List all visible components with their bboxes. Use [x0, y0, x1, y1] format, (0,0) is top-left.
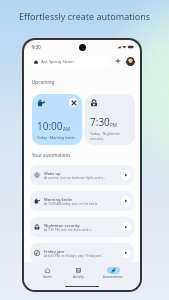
staticText: Nighttime security: [44, 223, 80, 228]
staticText: Today · Nighttime security: [90, 131, 120, 141]
staticText: At sunrise, turn on bedroom lights and o…: [44, 176, 106, 180]
button[interactable]: Dismiss: [69, 98, 78, 107]
staticText: Home: [43, 275, 53, 279]
staticText: 9:30: [32, 44, 41, 50]
button[interactable]: Run: [121, 248, 131, 258]
button[interactable]: Run: [121, 196, 131, 206]
button[interactable]: Add automation: [114, 57, 122, 65]
button[interactable]: Friday jam: [30, 243, 134, 263]
button[interactable]: Morning kettle: [30, 191, 134, 211]
staticText: AM: [63, 126, 71, 132]
staticText: Today · Morning kettle: [37, 135, 75, 140]
button[interactable]: Activity: [71, 267, 86, 279]
button[interactable]: Ask Spring Street: [30, 56, 111, 67]
button[interactable]: Run: [121, 222, 131, 232]
staticText: At 7:30 PM, lock the doors and c…: [44, 228, 93, 232]
staticText: At 10:00 AM today, turn on the kettle: [44, 202, 98, 206]
button[interactable]: Home: [40, 267, 55, 279]
button[interactable]: Wake up: [30, 165, 134, 185]
button[interactable]: Run: [121, 170, 131, 180]
staticText: 7:30: [90, 115, 110, 129]
staticText: Morning kettle: [44, 197, 73, 202]
button[interactable]: Nighttime security: [30, 217, 134, 237]
button[interactable]: 7:30: [85, 94, 135, 145]
button[interactable]: Dismiss: [32, 94, 82, 145]
staticText: Effortlessly create automations: [0, 10, 169, 22]
staticText: At 6:00 PM, on Fridays, play "Friday jam…: [44, 254, 105, 258]
staticText: Ask Spring Street: [41, 59, 74, 65]
staticText: Wake up: [44, 171, 61, 176]
button[interactable]: Automations: [102, 267, 124, 279]
staticText: Automations: [103, 275, 123, 279]
staticText: Activity: [73, 275, 84, 279]
staticText: Friday jam: [44, 249, 64, 254]
staticText: PM: [110, 122, 117, 128]
staticText: 10:00: [37, 119, 63, 133]
staticText: Upcoming: [32, 79, 55, 85]
button[interactable]: Profile: [126, 57, 135, 66]
staticText: Your automations: [32, 152, 71, 158]
